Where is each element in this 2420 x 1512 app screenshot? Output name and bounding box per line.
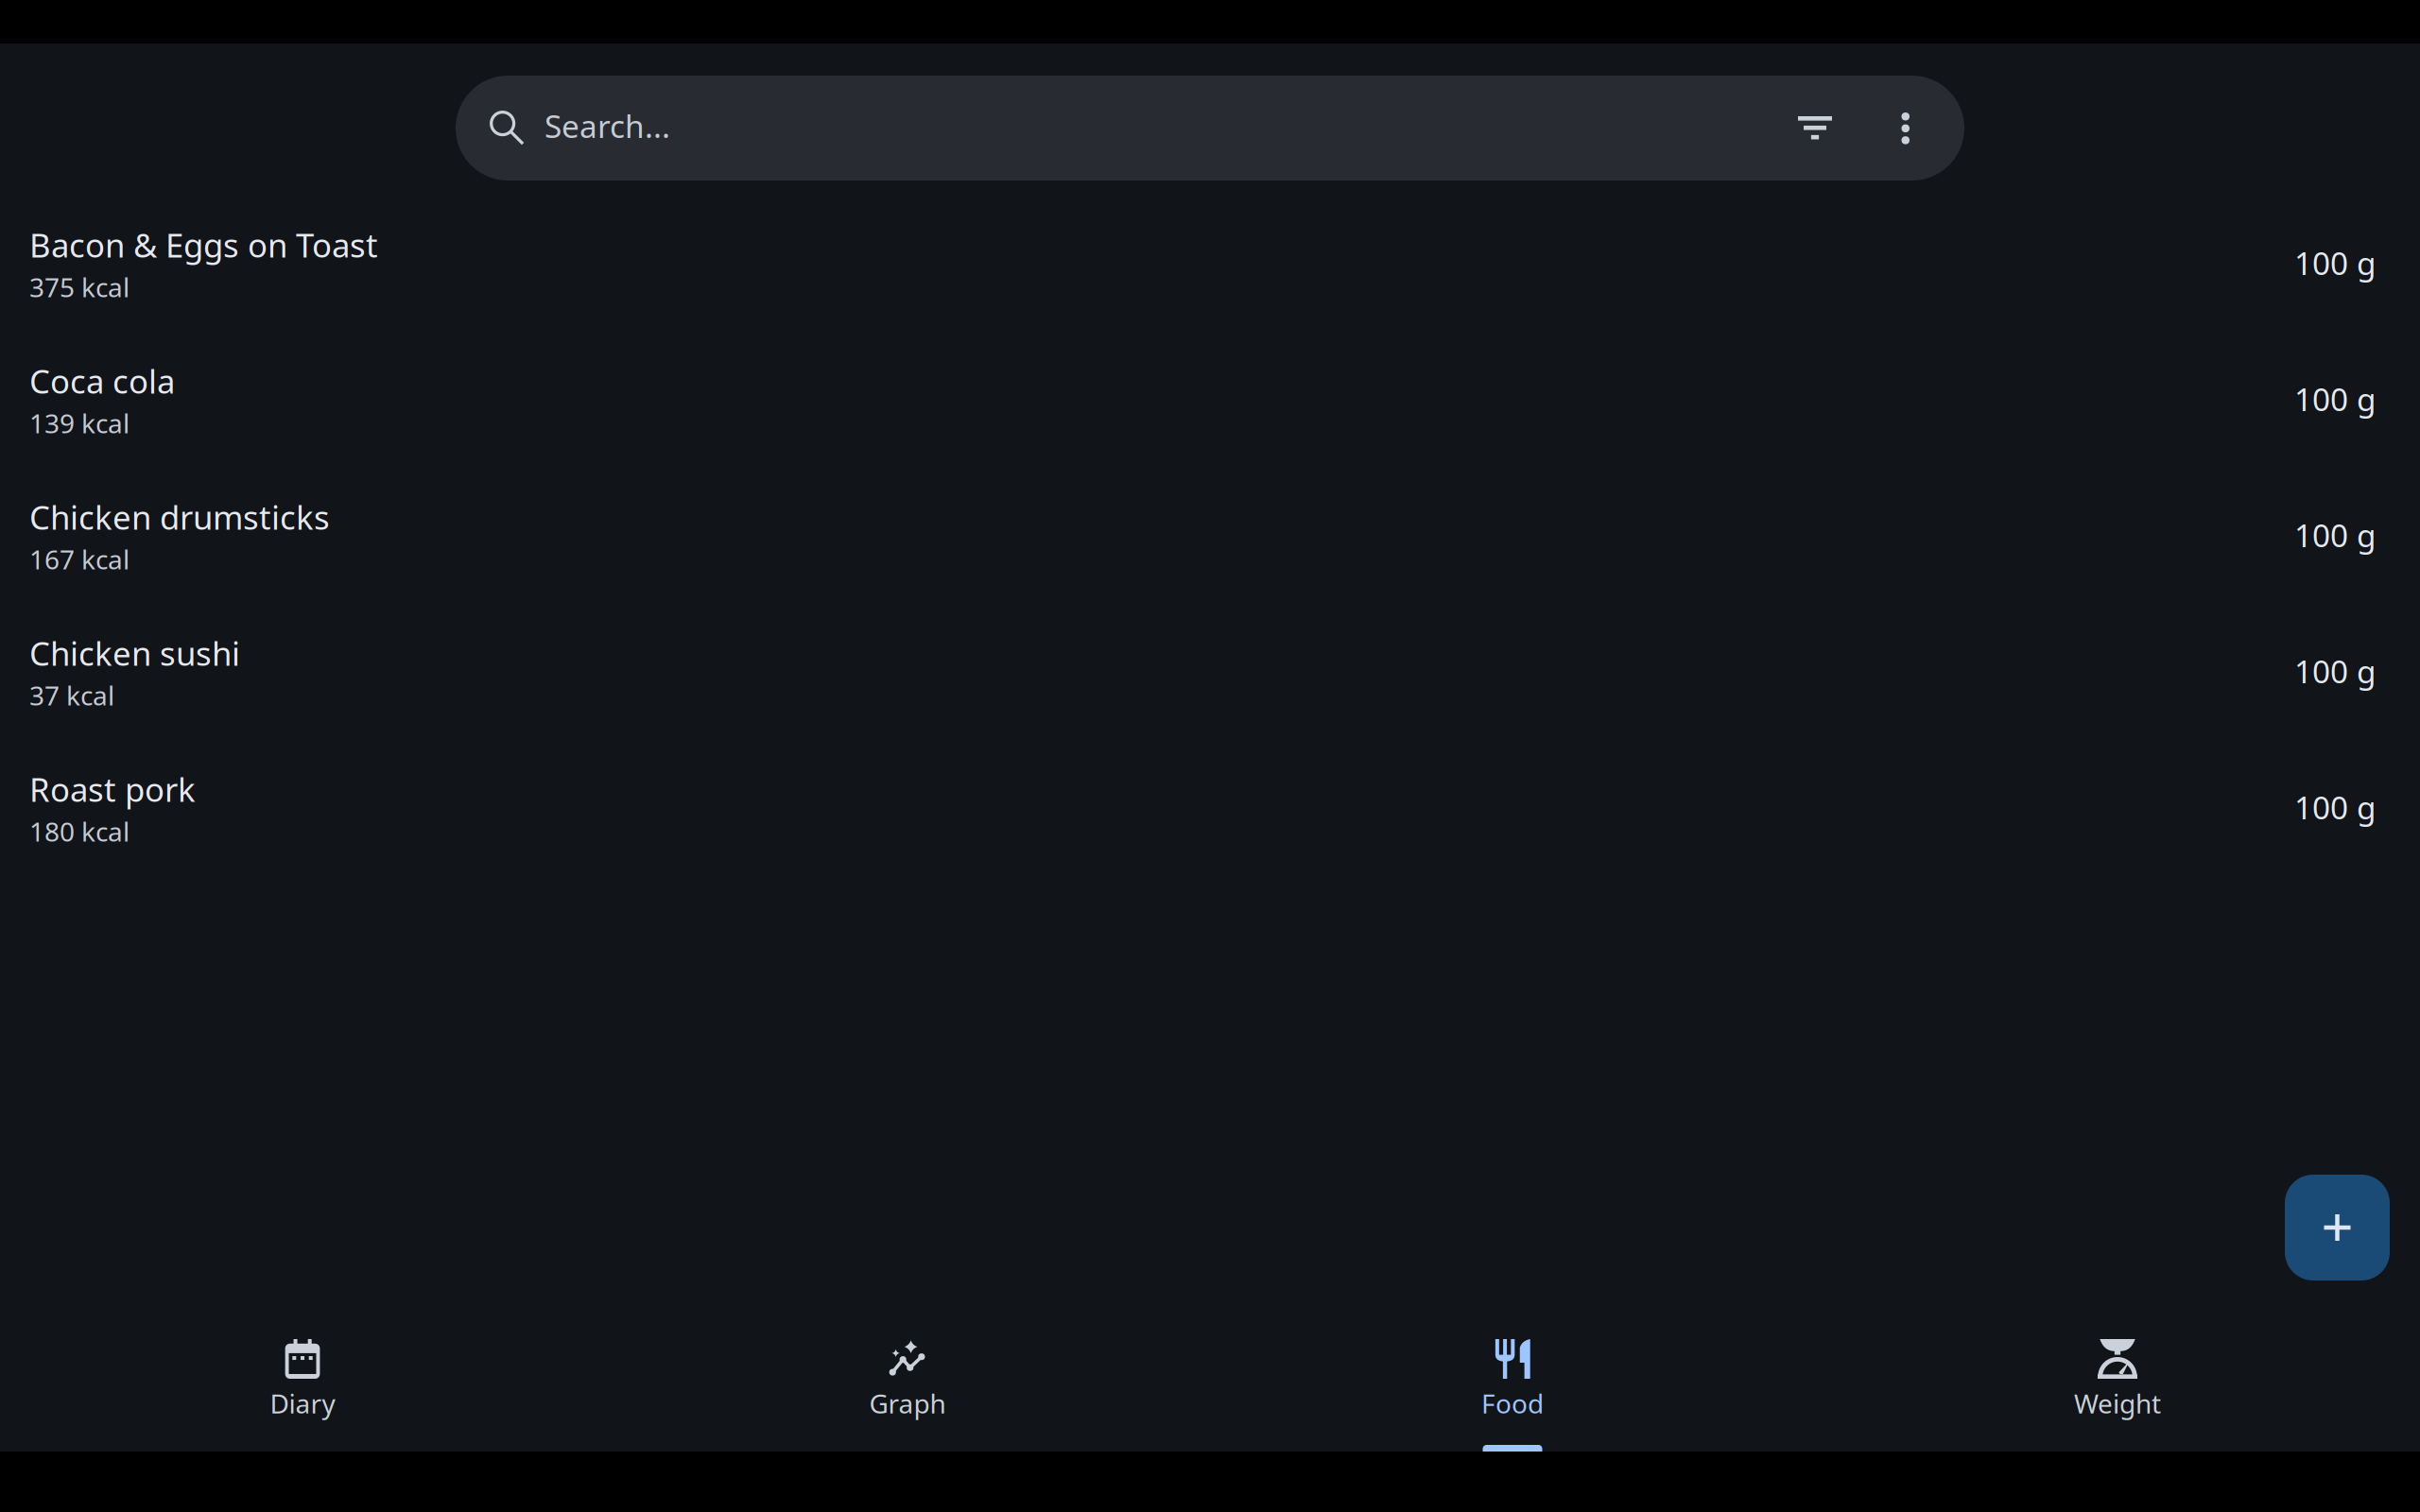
staticText: 100 g (2294, 650, 2377, 692)
button[interactable]: Chicken drumsticks (0, 506, 2420, 642)
button[interactable]: Roast pork (0, 778, 2420, 914)
staticText: Coca cola (29, 359, 175, 403)
button[interactable]: More options (1860, 76, 1951, 180)
button[interactable]: Coca cola (0, 369, 2420, 506)
staticText: 100 g (2294, 514, 2377, 556)
staticText: Graph (869, 1386, 946, 1421)
button[interactable]: Add food (2285, 1175, 2390, 1280)
staticText: 100 g (2294, 378, 2377, 420)
button[interactable]: Graph (605, 1339, 1210, 1453)
staticText: Food (1481, 1386, 1544, 1421)
staticText: Chicken sushi (29, 631, 240, 675)
staticText: 100 g (2294, 242, 2377, 284)
staticText: 139 kcal (29, 405, 130, 441)
staticText: 100 g (2294, 786, 2377, 828)
staticText: Bacon & Eggs on Toast (29, 223, 378, 266)
button[interactable]: Chicken sushi (0, 642, 2420, 778)
button[interactable]: Diary (0, 1339, 605, 1453)
staticText: 375 kcal (29, 269, 130, 304)
staticText: 37 kcal (29, 678, 114, 713)
button[interactable]: Food (1210, 1339, 1815, 1453)
button[interactable]: Filter (1770, 76, 1860, 180)
staticText: Search... (544, 105, 670, 147)
staticText: Chicken drumsticks (29, 495, 330, 539)
staticText: Diary (270, 1386, 335, 1421)
button[interactable]: Weight (1815, 1339, 2420, 1453)
staticText: Weight (2074, 1386, 2161, 1421)
staticText: Roast pork (29, 767, 196, 811)
button[interactable]: Bacon & Eggs on Toast (0, 233, 2420, 369)
staticText: 180 kcal (29, 814, 130, 849)
staticText: 167 kcal (29, 541, 130, 577)
